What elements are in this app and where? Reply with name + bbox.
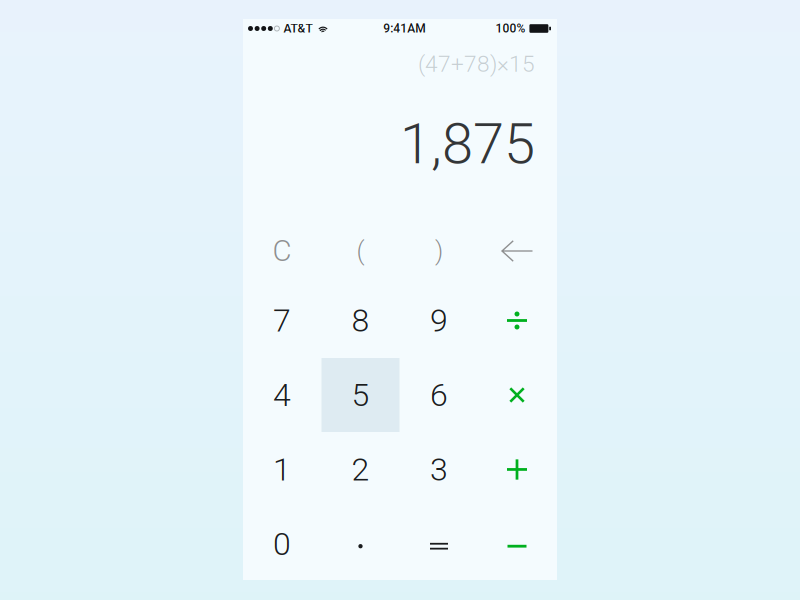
staticText: 5: [351, 376, 369, 414]
button[interactable]: 5: [321, 358, 400, 432]
staticText: AT&T: [283, 21, 312, 36]
button[interactable]: 4: [243, 358, 321, 432]
staticText: 1: [273, 451, 291, 488]
button[interactable]: Delete: [478, 214, 556, 288]
staticText: 4: [273, 376, 291, 414]
staticText: ): [435, 236, 443, 266]
staticText: 9: [430, 302, 448, 339]
staticText: 7: [273, 302, 291, 339]
staticText: 2: [351, 451, 369, 488]
button[interactable]: (: [321, 214, 400, 288]
staticText: 1,875: [400, 111, 535, 177]
button[interactable]: Multiply: [478, 358, 556, 432]
staticText: 3: [430, 451, 448, 488]
staticText: 8: [351, 302, 369, 339]
button[interactable]: 2: [321, 432, 400, 507]
button[interactable]: Equals: [400, 509, 478, 583]
staticText: 0: [273, 525, 291, 563]
button[interactable]: 0: [243, 507, 321, 581]
button[interactable]: C: [243, 214, 321, 288]
button[interactable]: 7: [243, 283, 321, 358]
button[interactable]: Plus: [478, 432, 556, 507]
button[interactable]: 6: [400, 358, 478, 432]
button[interactable]: 8: [321, 283, 400, 358]
staticText: C: [272, 234, 291, 268]
button[interactable]: 1: [243, 432, 321, 507]
staticText: 100%: [495, 21, 525, 36]
button[interactable]: Divide: [478, 283, 556, 358]
staticText: 6: [430, 376, 448, 414]
staticText: (: [356, 236, 364, 266]
button[interactable]: Decimal point: [321, 509, 400, 583]
button[interactable]: Minus: [478, 509, 556, 583]
button[interactable]: 3: [400, 432, 478, 507]
button[interactable]: ): [400, 214, 478, 288]
staticText: 9:41AM: [383, 21, 425, 36]
button[interactable]: 9: [400, 283, 478, 358]
staticText: (47+78)×15: [418, 51, 535, 77]
